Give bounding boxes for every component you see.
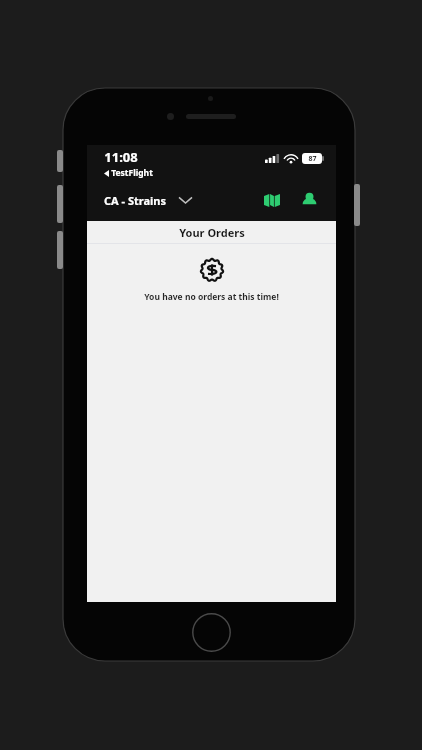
staticText: CA - Strains xyxy=(104,193,166,208)
button[interactable]: Expand region selector xyxy=(172,187,198,213)
button[interactable]: Account xyxy=(295,186,323,214)
button[interactable]: Map xyxy=(258,186,286,214)
staticText: 11:08 xyxy=(104,148,138,166)
staticText: TestFlight xyxy=(111,167,153,179)
staticText: You have no orders at this time! xyxy=(144,291,279,303)
staticText: 87 xyxy=(308,154,317,164)
staticText: Your Orders xyxy=(179,225,245,240)
